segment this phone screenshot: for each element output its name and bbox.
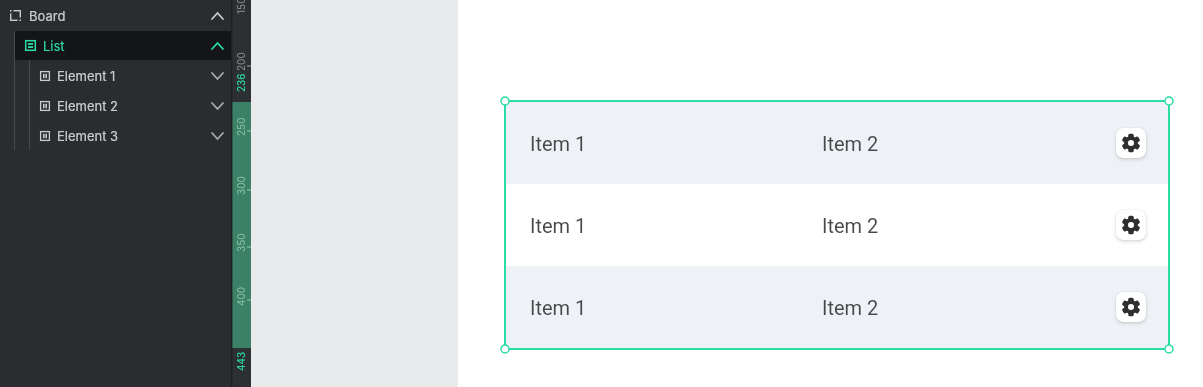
button[interactable] [1116,210,1146,240]
staticText: 250 [235,117,247,136]
button[interactable]: List [15,31,231,60]
staticText: 350 [235,233,247,252]
staticText: Item 2 [822,132,879,155]
staticText: Item 2 [822,296,879,319]
staticText: Element 3 [57,128,119,144]
staticText: 400 [235,286,247,306]
button[interactable]: Item 1 [506,266,1168,348]
staticText: Item 2 [822,214,879,237]
staticText: List [43,38,65,54]
button[interactable]: Item 1 [506,102,1168,184]
staticText: 236 [235,73,247,92]
staticText: 443 [235,351,247,371]
staticText: 200 [235,52,247,71]
button[interactable]: Element 2 [0,91,231,121]
button[interactable] [1116,292,1146,322]
staticText: Item 1 [530,296,587,319]
staticText: 150 [235,0,247,14]
staticText: 300 [235,176,247,195]
button[interactable]: Board [0,0,231,31]
staticText: Board [29,8,66,24]
staticText: Element 1 [57,68,116,84]
button[interactable]: Element 1 [0,61,231,91]
staticText: Item 1 [530,132,587,155]
staticText: Item 1 [530,214,587,237]
button[interactable]: Element 3 [0,121,231,151]
button[interactable] [1116,128,1146,158]
staticText: Element 2 [57,98,119,114]
button[interactable]: Item 1 [506,184,1168,266]
